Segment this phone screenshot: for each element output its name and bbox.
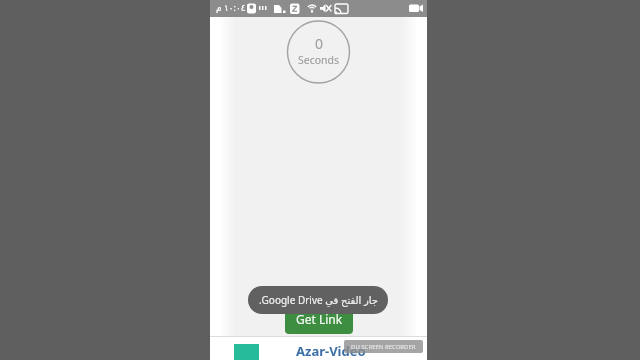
button[interactable]: Get Link	[285, 304, 353, 334]
staticText: Get Link	[296, 311, 343, 327]
button[interactable]: Azar-Video	[210, 337, 427, 360]
staticText: Azar-Video	[296, 342, 366, 360]
staticText: DU SCREEN RECORDER	[351, 343, 416, 351]
staticText: 0	[315, 34, 324, 53]
staticText: ١٠:٠٤ م	[216, 1, 246, 13]
staticText: Seconds	[298, 53, 340, 67]
staticText: جار الفتح في Google Drive.	[258, 293, 378, 307]
